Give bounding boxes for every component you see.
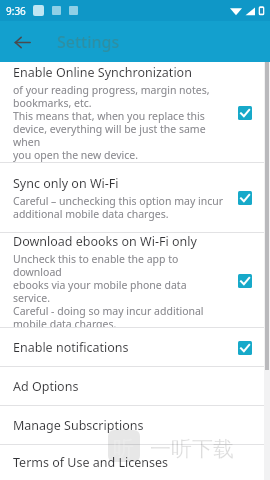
button[interactable]: Terms of Use and Licenses — [0, 445, 270, 480]
staticText: Enable notifications — [13, 339, 129, 356]
staticText: 9:36 — [6, 4, 26, 18]
button[interactable]: Ad Options — [0, 367, 270, 405]
staticText: Settings — [57, 31, 120, 53]
button[interactable]: Enable notifications — [0, 328, 270, 366]
button[interactable]: Back — [6, 26, 38, 58]
button[interactable]: Sync only on Wi-Fi — [0, 163, 270, 232]
staticText: of your reading progress, margin notes, … — [13, 83, 226, 162]
staticText: Careful – unchecking this option may inc… — [13, 194, 224, 221]
staticText: Sync only on Wi-Fi — [13, 175, 119, 192]
button[interactable]: Toggle setting — [237, 190, 252, 205]
button[interactable]: Manage Subscriptions — [0, 406, 270, 444]
button[interactable]: Toggle setting — [237, 273, 252, 288]
staticText: 听 — [113, 436, 134, 462]
staticText: 一听下载 — [150, 436, 234, 462]
staticText: Terms of Use and Licenses — [13, 454, 169, 471]
button[interactable]: Toggle setting — [237, 105, 252, 120]
staticText: Ad Options — [13, 378, 79, 395]
button[interactable]: Enable Online Synchronization — [0, 63, 270, 162]
button[interactable]: Toggle setting — [237, 340, 252, 355]
button[interactable]: Download ebooks on Wi-Fi only — [0, 233, 270, 327]
staticText: Enable Online Synchronization — [13, 64, 192, 81]
staticText: Uncheck this to enable the app to downlo… — [13, 252, 226, 327]
staticText: Manage Subscriptions — [13, 417, 144, 434]
staticText: Download ebooks on Wi-Fi only — [13, 233, 197, 250]
